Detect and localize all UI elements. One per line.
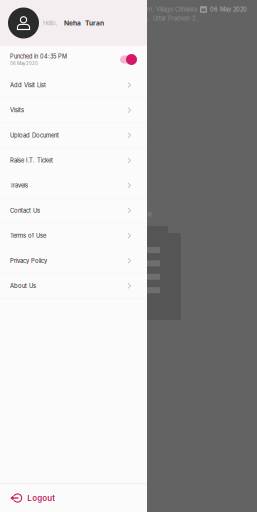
button[interactable]: Privacy Policy — [0, 249, 147, 274]
button[interactable]: Terms of Use — [0, 224, 147, 249]
button[interactable]: About Us — [0, 274, 147, 299]
staticText: Visits — [10, 107, 24, 114]
staticText: Travels — [10, 182, 28, 189]
button[interactable]: Upload Document — [0, 123, 147, 148]
staticText: ble — [144, 211, 152, 218]
staticText: 06 May 2020 — [10, 61, 38, 66]
button[interactable]: Hello, — [0, 0, 147, 46]
button[interactable]: Punch in toggle — [120, 53, 137, 66]
staticText: Punched in 04:35 PM — [10, 53, 67, 60]
button[interactable]: Raise I.T. Ticket — [0, 148, 147, 173]
button[interactable]: Visits — [0, 98, 147, 123]
staticText: Contact Us — [10, 207, 40, 214]
staticText: , Uttar Pradesh 2... — [147, 15, 201, 22]
staticText: m, Village Chhalera — [147, 6, 197, 13]
staticText: Raise I.T. Ticket — [10, 157, 53, 164]
staticText: Terms of Use — [10, 232, 46, 239]
button[interactable]: Logout — [0, 484, 147, 512]
staticText: 06 May 2020 — [210, 6, 247, 13]
staticText: Hello, — [43, 19, 58, 27]
staticText: Privacy Policy — [10, 257, 47, 264]
staticText: Upload Document — [10, 132, 59, 139]
button[interactable]: Travels — [0, 173, 147, 198]
staticText: Neha Turan — [64, 19, 104, 27]
button[interactable]: Add Visit List — [0, 73, 147, 98]
staticText: Add Visit List — [10, 81, 46, 89]
button[interactable]: Contact Us — [0, 198, 147, 224]
staticText: About Us — [10, 282, 36, 289]
staticText: Logout — [27, 493, 55, 503]
